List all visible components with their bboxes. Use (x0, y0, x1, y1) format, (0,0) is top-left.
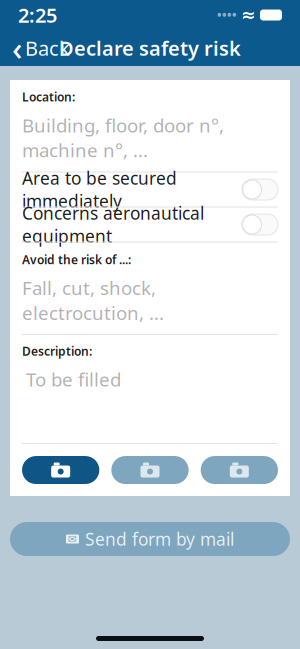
staticText: Description: (22, 343, 92, 359)
staticText: Area to be secured immediately (22, 166, 177, 212)
button[interactable]: Take photo (22, 456, 99, 484)
staticText: To be filled (26, 367, 121, 392)
button[interactable]: ✉ (10, 522, 290, 556)
staticText: Send form by mail (85, 527, 234, 550)
staticText: ✉ (68, 533, 77, 545)
button[interactable]: Concerns aeronautical equipment (10, 207, 290, 241)
staticText: Concerns aeronautical equipment (22, 201, 204, 247)
staticText: Avoid the risk of ...: (22, 251, 131, 267)
button[interactable]: Area to be secured immediately (10, 172, 290, 206)
staticText: Fall, cut, shock, electrocution, ... (22, 275, 164, 325)
staticText: Declare safety risk (59, 35, 241, 61)
staticText: Back (25, 35, 70, 61)
staticText: Location: (22, 89, 75, 105)
staticText: •••• (217, 7, 237, 23)
button[interactable]: ‹ (4, 30, 78, 66)
staticText: ‹ (12, 27, 22, 69)
staticText: ≈ (241, 5, 256, 25)
button[interactable]: Take photo (201, 456, 278, 484)
staticText: Building, floor, door n°, machine n°, ..… (22, 113, 224, 162)
button[interactable]: Take photo (111, 456, 189, 484)
staticText: 2:25 (18, 2, 57, 28)
